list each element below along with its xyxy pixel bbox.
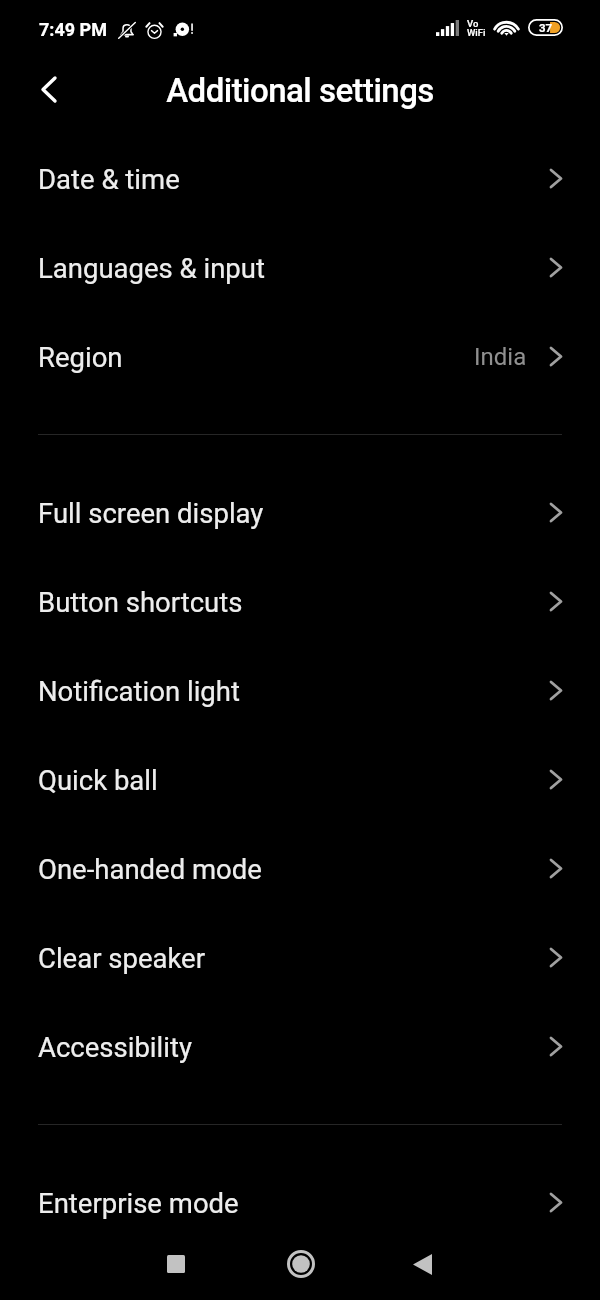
staticText: 37 — [539, 21, 553, 34]
staticText: Vo — [467, 18, 479, 29]
staticText: Clear speaker — [38, 942, 206, 974]
button[interactable]: Button shortcuts — [0, 557, 600, 646]
staticText: Date & time — [38, 163, 180, 195]
button[interactable]: One-handed mode — [0, 824, 600, 913]
button[interactable]: Quick ball — [0, 735, 600, 824]
button[interactable]: Full screen display — [0, 468, 600, 557]
staticText: Enterprise mode — [38, 1187, 239, 1219]
button[interactable]: Notification light — [0, 646, 600, 735]
staticText: WiFi — [467, 27, 486, 38]
staticText: 7:49 PM — [39, 19, 107, 40]
staticText: Quick ball — [38, 764, 158, 796]
button[interactable]: Date & time — [0, 134, 600, 223]
staticText: Languages & input — [38, 252, 265, 284]
button[interactable]: Back — [21, 61, 77, 117]
staticText: Notification light — [38, 675, 240, 707]
button[interactable]: Accessibility — [0, 1002, 600, 1091]
staticText: Button shortcuts — [38, 586, 243, 618]
button[interactable]: Enterprise mode — [0, 1158, 600, 1247]
button[interactable]: Region — [0, 312, 600, 401]
button[interactable]: Recent apps — [146, 1234, 206, 1294]
staticText: One-handed mode — [38, 853, 262, 885]
button[interactable]: Languages & input — [0, 223, 600, 312]
staticText: Region — [38, 341, 123, 373]
button[interactable]: Clear speaker — [0, 913, 600, 1002]
staticText: India — [474, 343, 527, 371]
button[interactable]: Home — [271, 1234, 331, 1294]
button[interactable]: Back — [392, 1234, 452, 1294]
staticText: Full screen display — [38, 497, 264, 529]
staticText: Accessibility — [38, 1031, 192, 1063]
staticText: Additional settings — [166, 71, 434, 110]
